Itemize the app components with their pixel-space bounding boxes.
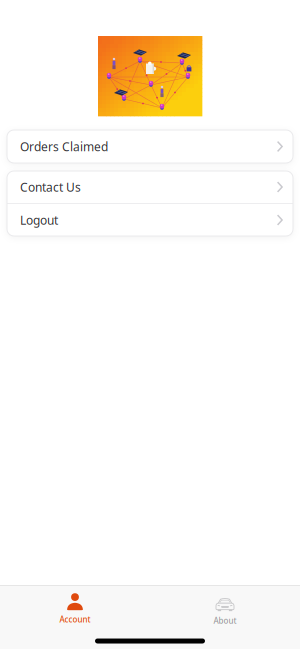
staticText: About	[213, 615, 236, 626]
staticText: Logout	[20, 212, 58, 228]
staticText: Contact Us	[20, 179, 81, 195]
button[interactable]: Orders Claimed	[7, 130, 293, 163]
button[interactable]: Account	[0, 594, 150, 624]
staticText: Account	[59, 614, 90, 625]
button[interactable]: About	[150, 594, 300, 624]
button[interactable]: Logout	[7, 204, 293, 236]
button[interactable]: Contact Us	[7, 171, 293, 203]
staticText: Orders Claimed	[20, 138, 108, 154]
